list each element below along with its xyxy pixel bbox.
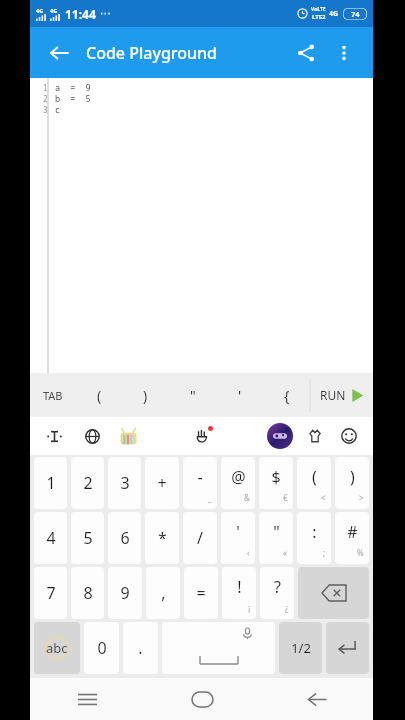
staticText: { <box>284 386 290 405</box>
staticText: 1/2 <box>291 639 311 657</box>
button[interactable]: ) <box>122 373 169 417</box>
button[interactable]: 1/2 <box>279 622 322 674</box>
staticText: # <box>347 521 358 543</box>
staticText: 5 <box>83 527 93 549</box>
button[interactable]: 9 <box>108 567 142 619</box>
staticText: a = 9 <box>55 82 91 93</box>
staticText: : <box>312 521 317 543</box>
button[interactable]: @ <box>221 457 255 509</box>
button[interactable]: ' <box>216 373 263 417</box>
staticText: < <box>321 492 326 503</box>
staticText: ‹ <box>247 547 250 558</box>
staticText: 8 <box>83 582 93 604</box>
staticText: ¿ <box>285 602 289 613</box>
button[interactable]: / <box>183 512 217 564</box>
button[interactable]: 2 <box>71 457 104 509</box>
staticText: 74 <box>351 9 360 19</box>
button[interactable]: Emoji <box>337 424 361 448</box>
button[interactable]: 8 <box>71 567 104 619</box>
button[interactable]: abc <box>34 622 80 674</box>
staticText: = <box>196 582 206 604</box>
staticText: " <box>273 521 280 543</box>
button[interactable]: Skins <box>303 424 327 448</box>
staticText: « <box>283 547 288 558</box>
button[interactable]: Home <box>145 678 259 720</box>
button[interactable]: TAB <box>30 373 76 417</box>
staticText: 9 <box>120 582 130 604</box>
button[interactable]: Language <box>80 424 104 448</box>
staticText: ? <box>274 576 281 598</box>
button[interactable]: 7 <box>34 567 67 619</box>
staticText: 3 <box>120 472 130 494</box>
staticText: * <box>158 527 167 549</box>
staticText: + <box>157 472 167 494</box>
button[interactable]: 1 <box>30 78 373 373</box>
staticText: VoLTE <box>311 6 326 13</box>
button[interactable]: RUN <box>311 373 373 417</box>
staticText: 4G <box>329 9 339 19</box>
button[interactable]: ' <box>221 512 255 564</box>
button[interactable]: 4 <box>34 512 67 564</box>
staticText: ⋯ <box>100 7 111 20</box>
button[interactable]: . <box>123 622 158 674</box>
staticText: 2 <box>43 93 48 104</box>
staticText: ¡ <box>248 602 251 613</box>
staticText: abc <box>46 639 68 657</box>
button[interactable]: ( <box>76 373 122 417</box>
button[interactable]: Theme store <box>267 423 293 449</box>
staticText: ; <box>323 547 326 558</box>
button[interactable]: " <box>259 512 293 564</box>
staticText: € <box>283 492 288 503</box>
button[interactable]: { <box>263 373 310 417</box>
button[interactable]: 1 <box>34 457 67 509</box>
staticText: / <box>197 527 203 549</box>
button[interactable]: # <box>335 512 369 564</box>
staticText: $ <box>271 466 281 488</box>
button[interactable]: enter <box>326 622 369 674</box>
button[interactable]: : <box>297 512 331 564</box>
button[interactable]: space <box>162 622 275 674</box>
button[interactable]: ! <box>222 567 256 619</box>
staticText: 11:44 <box>65 6 96 22</box>
button[interactable]: 6 <box>108 512 141 564</box>
button[interactable]: ? <box>260 567 294 619</box>
staticText: b = 5 <box>55 93 91 104</box>
button[interactable]: 3 <box>108 457 141 509</box>
staticText: ' <box>238 386 242 405</box>
button[interactable]: Text cursor <box>42 424 66 448</box>
button[interactable]: " <box>169 373 216 417</box>
button[interactable]: Recents <box>30 678 145 720</box>
button[interactable]: 5 <box>71 512 104 564</box>
button[interactable]: back <box>298 567 369 619</box>
staticText: ( <box>97 386 102 405</box>
staticText: 6 <box>120 527 130 549</box>
staticText: Code Playground <box>86 42 218 64</box>
button[interactable]: , <box>146 567 180 619</box>
staticText: TAB <box>43 388 63 403</box>
button[interactable]: 0 <box>84 622 119 674</box>
staticText: % <box>357 547 364 558</box>
button[interactable]: * <box>145 512 179 564</box>
button[interactable]: Clipboard <box>116 424 140 448</box>
staticText: 4 <box>46 527 56 549</box>
button[interactable]: ) <box>335 457 369 509</box>
button[interactable]: Gestures <box>191 424 215 448</box>
staticText: RUN <box>320 387 346 403</box>
button[interactable]: = <box>184 567 218 619</box>
button[interactable]: - <box>183 457 217 509</box>
button[interactable]: Back <box>40 34 78 72</box>
staticText: . <box>138 637 143 659</box>
staticText: " <box>190 386 196 405</box>
button[interactable]: More options <box>325 34 363 72</box>
button[interactable]: $ <box>259 457 293 509</box>
button[interactable]: + <box>145 457 179 509</box>
staticText: 0 <box>97 637 107 659</box>
button[interactable]: Back <box>259 678 373 720</box>
staticText: > <box>359 492 364 503</box>
staticText: 2 <box>83 472 93 494</box>
button[interactable]: ( <box>297 457 331 509</box>
staticText: & <box>244 492 250 503</box>
button[interactable]: Share <box>287 34 325 72</box>
staticText: c <box>55 104 61 115</box>
staticText: ! <box>237 576 242 598</box>
